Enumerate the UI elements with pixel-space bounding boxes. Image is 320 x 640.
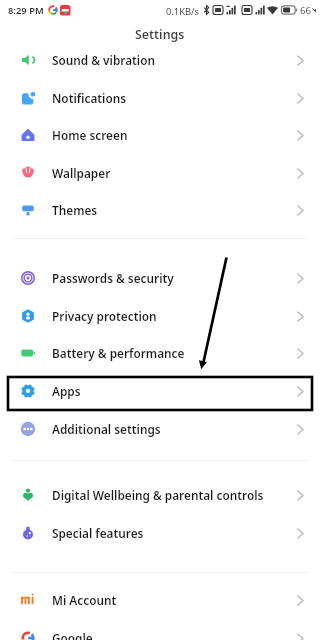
button[interactable]: Privacy protection bbox=[0, 297, 320, 335]
button[interactable]: Sound & vibration bbox=[0, 41, 320, 79]
staticText: Settings bbox=[135, 26, 185, 43]
button[interactable]: Additional settings bbox=[0, 410, 320, 448]
staticText: Wallpaper bbox=[52, 165, 111, 181]
staticText: Themes bbox=[52, 202, 98, 218]
button[interactable]: Notifications bbox=[0, 79, 320, 117]
staticText: 0.1KB/s bbox=[166, 5, 199, 18]
button[interactable]: Battery & performance bbox=[0, 334, 320, 372]
staticText: Sound & vibration bbox=[52, 52, 155, 68]
staticText: Special features bbox=[52, 525, 144, 541]
staticText: 66 bbox=[300, 4, 311, 17]
staticText: Battery & performance bbox=[52, 345, 185, 361]
button[interactable]: Google bbox=[0, 619, 320, 640]
button[interactable]: Home screen bbox=[0, 116, 320, 154]
button[interactable]: Mi Account bbox=[0, 581, 320, 619]
staticText: Home screen bbox=[52, 127, 128, 143]
button[interactable]: Special features bbox=[0, 514, 320, 552]
button[interactable]: Themes bbox=[0, 191, 320, 229]
staticText: Notifications bbox=[52, 90, 127, 106]
staticText: 8:29 PM bbox=[8, 4, 44, 17]
button[interactable]: Passwords & security bbox=[0, 259, 320, 297]
staticText: Additional settings bbox=[52, 421, 161, 437]
button[interactable]: Digital Wellbeing & parental controls bbox=[0, 476, 320, 514]
staticText: Apps bbox=[52, 383, 81, 399]
button[interactable]: Wallpaper bbox=[0, 154, 320, 192]
staticText: Privacy protection bbox=[52, 308, 157, 324]
staticText: Digital Wellbeing & parental controls bbox=[52, 487, 264, 503]
staticText: Google bbox=[52, 630, 93, 640]
staticText: Passwords & security bbox=[52, 270, 174, 286]
button[interactable]: Apps bbox=[0, 372, 320, 410]
staticText: Mi Account bbox=[52, 592, 117, 608]
